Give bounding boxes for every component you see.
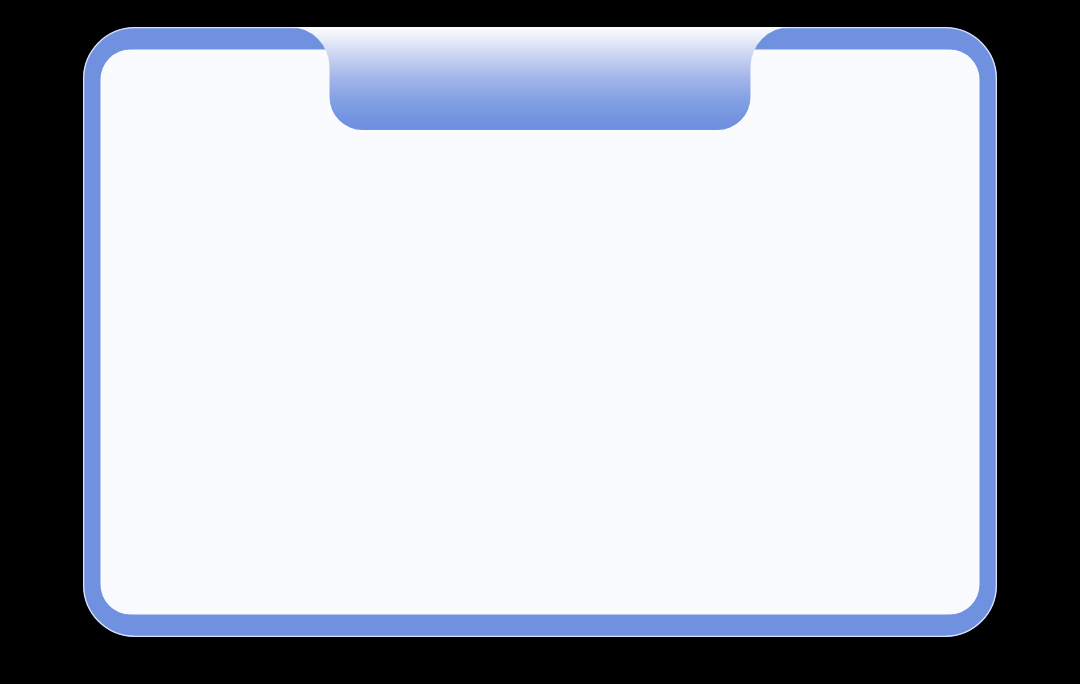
button[interactable]: Open folder <box>83 27 997 637</box>
button[interactable]: Folder tab <box>330 27 751 130</box>
